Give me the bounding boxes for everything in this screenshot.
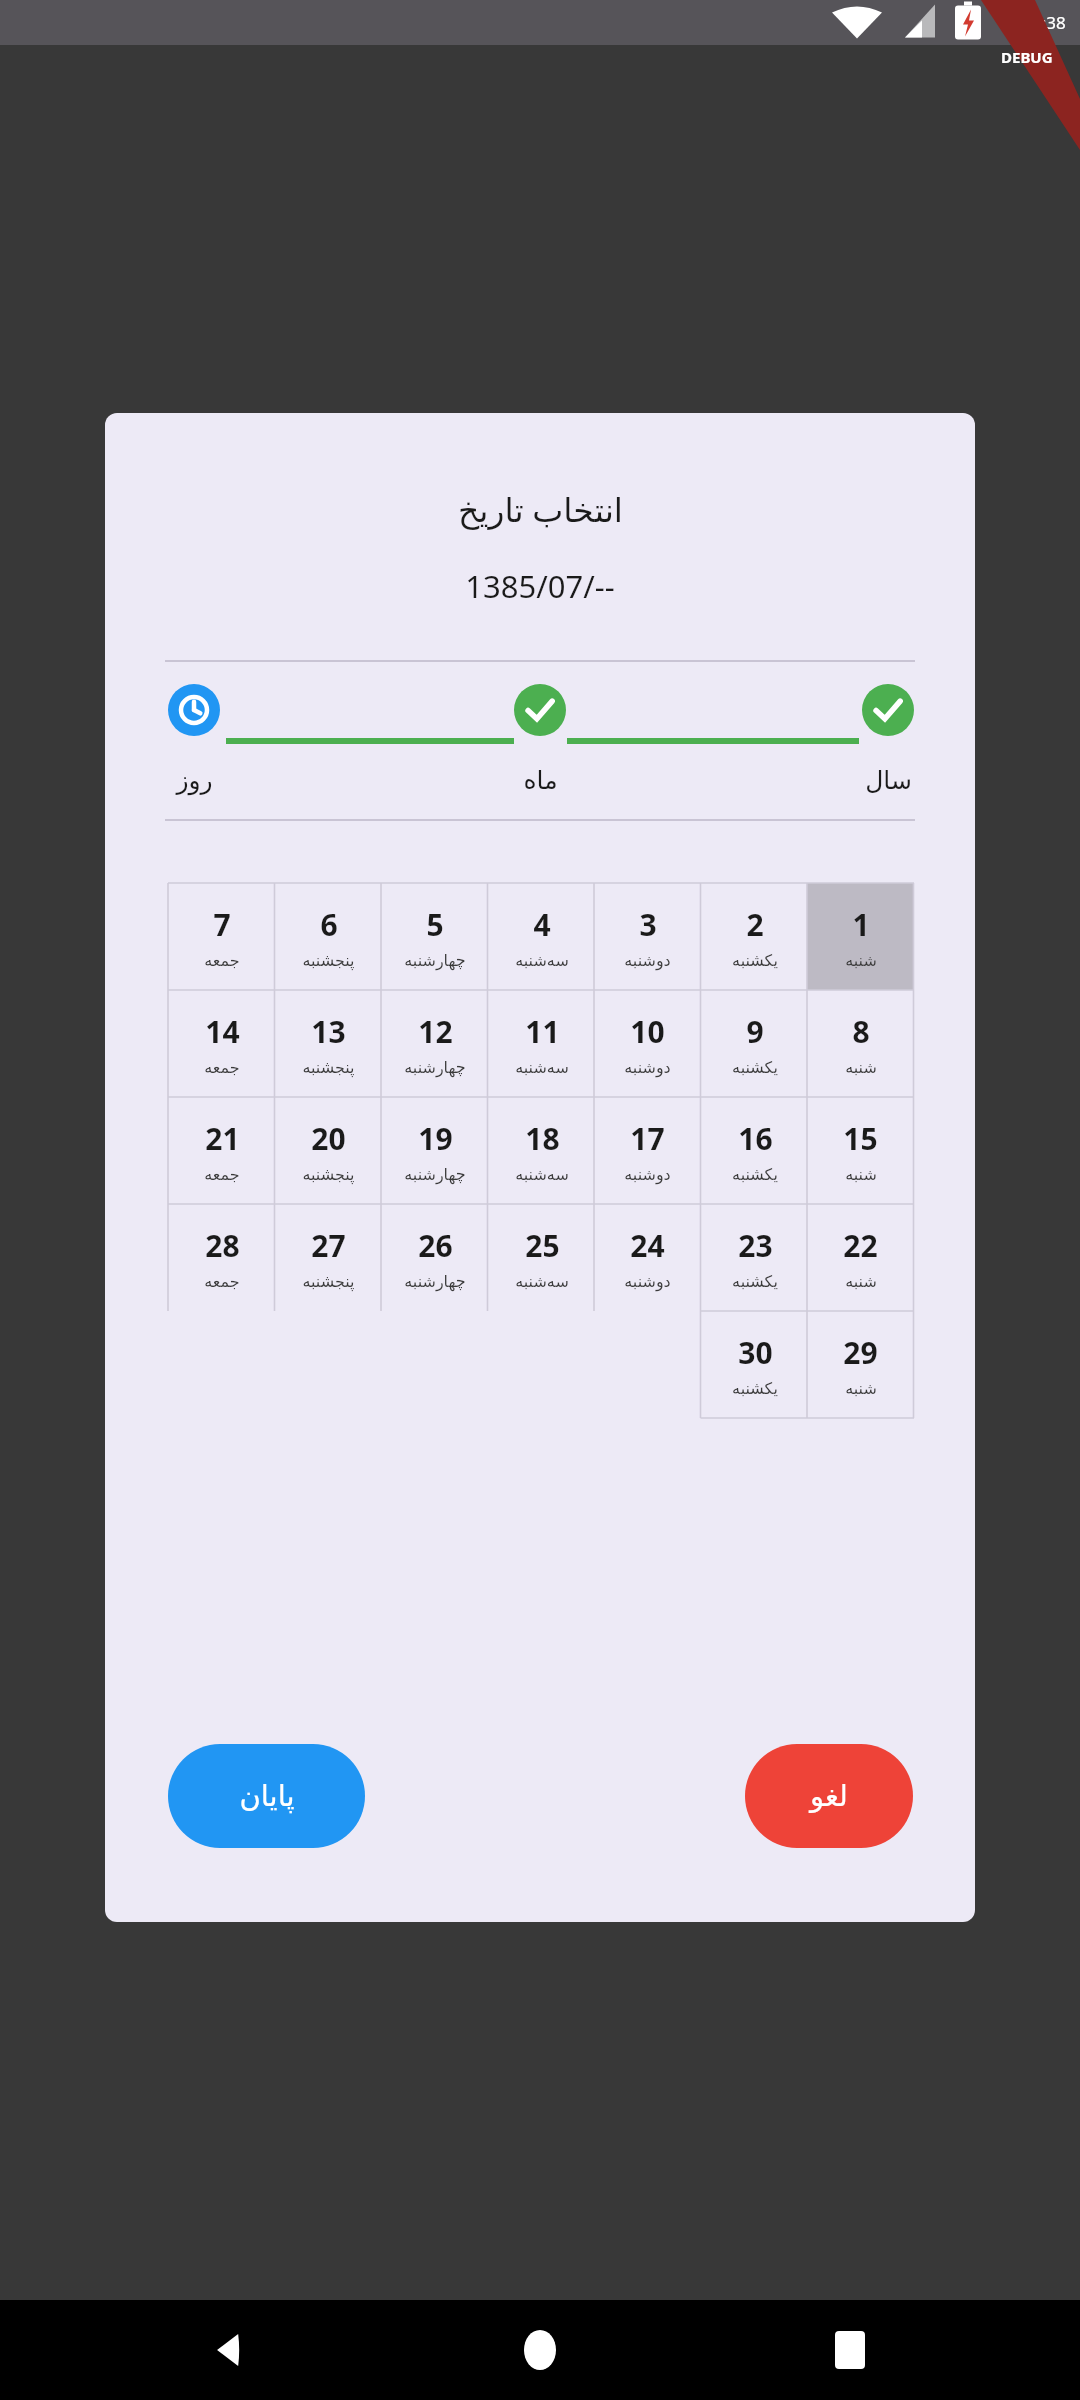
staticText: شنبه <box>845 951 877 970</box>
button[interactable]: 14 <box>168 990 275 1097</box>
staticText: 30 <box>738 1332 773 1373</box>
button[interactable]: 17 <box>594 1097 701 1204</box>
staticText: 14 <box>205 1011 240 1052</box>
staticText: سه‌شنبه <box>515 1272 569 1291</box>
button[interactable]: 1 <box>807 883 914 990</box>
button[interactable]: 30 <box>701 1311 808 1418</box>
button[interactable]: 10 <box>594 990 701 1097</box>
staticText: 6 <box>320 904 338 945</box>
button[interactable]: 26 <box>381 1204 488 1311</box>
button[interactable]: 16 <box>701 1097 808 1204</box>
staticText: 21 <box>205 1118 240 1159</box>
staticText: 27 <box>311 1225 346 1266</box>
button[interactable]: 11 <box>488 990 595 1097</box>
staticText: 7 <box>213 904 231 945</box>
staticText: پنجشنبه <box>302 951 355 970</box>
staticText: پایان <box>239 1779 295 1813</box>
staticText: شنبه <box>845 1165 877 1184</box>
staticText: 11 <box>525 1011 560 1052</box>
button[interactable]: لغو <box>745 1744 913 1848</box>
staticText: پنجشنبه <box>302 1165 355 1184</box>
button[interactable]: پایان <box>168 1744 365 1848</box>
staticText: 9 <box>746 1011 764 1052</box>
button[interactable]: 22 <box>807 1204 914 1311</box>
staticText: 1 <box>852 904 870 945</box>
staticText: چهارشنبه <box>404 1165 466 1184</box>
button[interactable]: Recents <box>810 2310 890 2390</box>
button[interactable]: 13 <box>275 990 382 1097</box>
staticText: جمعه <box>204 951 240 970</box>
staticText: 1385/07/-- <box>465 565 615 607</box>
staticText: 12 <box>418 1011 453 1052</box>
staticText: 17 <box>630 1118 665 1159</box>
staticText: 2 <box>746 904 764 945</box>
staticText: شنبه <box>845 1058 877 1077</box>
button[interactable]: 23 <box>701 1204 808 1311</box>
staticText: 15 <box>843 1118 878 1159</box>
staticText: جمعه <box>204 1272 240 1291</box>
button[interactable]: Home <box>500 2310 580 2390</box>
staticText: 24 <box>630 1225 665 1266</box>
button[interactable]: 12 <box>381 990 488 1097</box>
button[interactable]: 27 <box>275 1204 382 1311</box>
staticText: چهارشنبه <box>404 1272 466 1291</box>
staticText: سه‌شنبه <box>515 1165 569 1184</box>
staticText: 13 <box>311 1011 346 1052</box>
button[interactable]: 3 <box>594 883 701 990</box>
staticText: چهارشنبه <box>404 1058 466 1077</box>
staticText: 19 <box>418 1118 453 1159</box>
staticText: دوشنبه <box>624 951 671 970</box>
staticText: سه‌شنبه <box>515 1058 569 1077</box>
button[interactable]: ماه <box>514 684 566 736</box>
staticText: ماه <box>523 766 558 795</box>
button[interactable]: 29 <box>807 1311 914 1418</box>
button[interactable]: 4 <box>488 883 595 990</box>
staticText: 28 <box>205 1225 240 1266</box>
button[interactable]: 9 <box>701 990 808 1097</box>
staticText: شنبه <box>845 1379 877 1398</box>
staticText: جمعه <box>204 1165 240 1184</box>
staticText: دوشنبه <box>624 1058 671 1077</box>
staticText: 10 <box>630 1011 665 1052</box>
button[interactable]: 19 <box>381 1097 488 1204</box>
staticText: یکشنبه <box>732 1379 778 1398</box>
staticText: پنجشنبه <box>302 1272 355 1291</box>
staticText: چهارشنبه <box>404 951 466 970</box>
staticText: لغو <box>810 1779 848 1813</box>
staticText: یکشنبه <box>732 1165 778 1184</box>
staticText: 5 <box>426 904 444 945</box>
button[interactable]: 8 <box>807 990 914 1097</box>
button[interactable]: 20 <box>275 1097 382 1204</box>
staticText: پنجشنبه <box>302 1058 355 1077</box>
button[interactable]: 25 <box>488 1204 595 1311</box>
staticText: روز <box>176 766 213 795</box>
button[interactable]: 6 <box>275 883 382 990</box>
button[interactable]: 24 <box>594 1204 701 1311</box>
staticText: 20 <box>311 1118 346 1159</box>
button[interactable]: 2 <box>701 883 808 990</box>
staticText: دوشنبه <box>624 1272 671 1291</box>
staticText: 16 <box>738 1118 773 1159</box>
staticText: 4 <box>533 904 551 945</box>
staticText: 23 <box>738 1225 773 1266</box>
staticText: شنبه <box>845 1272 877 1291</box>
staticText: 29 <box>843 1332 878 1373</box>
staticText: یکشنبه <box>732 951 778 970</box>
button[interactable]: سال <box>862 684 914 736</box>
staticText: دوشنبه <box>624 1165 671 1184</box>
button[interactable]: 15 <box>807 1097 914 1204</box>
button[interactable]: 28 <box>168 1204 275 1311</box>
staticText: یکشنبه <box>732 1058 778 1077</box>
button[interactable]: روز <box>168 684 220 736</box>
button[interactable]: 7 <box>168 883 275 990</box>
staticText: 7:38 <box>1032 11 1066 34</box>
button[interactable]: Back <box>190 2310 270 2390</box>
staticText: سه‌شنبه <box>515 951 569 970</box>
button[interactable]: 5 <box>381 883 488 990</box>
staticText: 22 <box>843 1225 878 1266</box>
staticText: 18 <box>525 1118 560 1159</box>
button[interactable]: 18 <box>488 1097 595 1204</box>
staticText: 26 <box>418 1225 453 1266</box>
button[interactable]: 21 <box>168 1097 275 1204</box>
staticText: DEBUG <box>1001 47 1053 67</box>
